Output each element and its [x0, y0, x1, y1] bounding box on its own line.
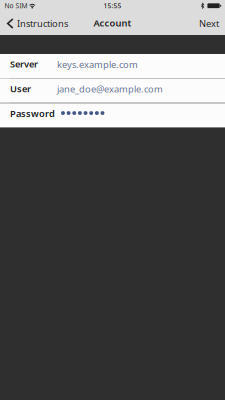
- button[interactable]: Next: [191, 13, 225, 34]
- staticText: Server: [10, 58, 38, 70]
- staticText: No SIM: [4, 1, 27, 10]
- staticText: Next: [199, 17, 219, 30]
- staticText: Password: [10, 107, 55, 120]
- staticText: Account: [93, 17, 131, 29]
- button[interactable]: Instructions: [0, 13, 73, 34]
- button[interactable]: Password: [0, 103, 225, 127]
- staticText: 15:55: [103, 1, 121, 10]
- staticText: User: [10, 82, 31, 95]
- button[interactable]: Server: [0, 54, 225, 78]
- staticText: Instructions: [17, 17, 68, 30]
- button[interactable]: User: [0, 79, 225, 103]
- staticText: keys.example.com: [57, 58, 138, 70]
- staticText: jane_doe@example.com: [57, 83, 163, 95]
